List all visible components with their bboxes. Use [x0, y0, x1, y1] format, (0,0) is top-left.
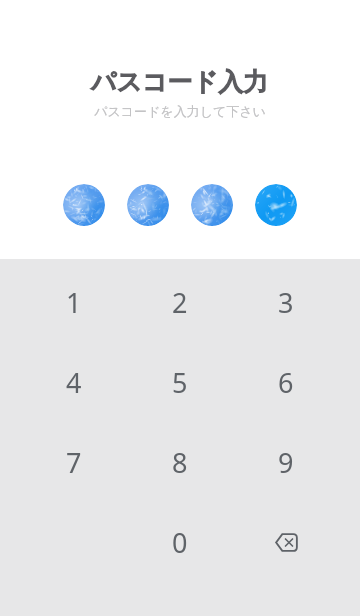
button[interactable]: 3	[233, 262, 339, 342]
staticText: 8	[172, 444, 188, 481]
button[interactable]: 5	[127, 342, 233, 422]
button[interactable]: 1	[21, 262, 127, 342]
staticText: パスコードを入力して下さい	[94, 103, 266, 119]
staticText: 0	[172, 524, 188, 561]
staticText: 2	[172, 284, 188, 321]
staticText: パスコード入力	[91, 66, 269, 97]
button[interactable]: 2	[127, 262, 233, 342]
staticText: 3	[278, 284, 294, 321]
button[interactable]: Backspace	[233, 502, 339, 582]
button[interactable]: 4	[21, 342, 127, 422]
staticText: 6	[278, 364, 294, 401]
staticText: 5	[172, 364, 188, 401]
staticText: 9	[278, 444, 294, 481]
button[interactable]: 7	[21, 422, 127, 502]
button[interactable]: 6	[233, 342, 339, 422]
staticText: 7	[66, 444, 82, 481]
button[interactable]: 8	[127, 422, 233, 502]
staticText: 1	[66, 284, 82, 321]
button[interactable]: 9	[233, 422, 339, 502]
staticText: パスコード入力	[91, 66, 269, 97]
button[interactable]: 0	[127, 502, 233, 582]
staticText: 4	[66, 364, 82, 401]
